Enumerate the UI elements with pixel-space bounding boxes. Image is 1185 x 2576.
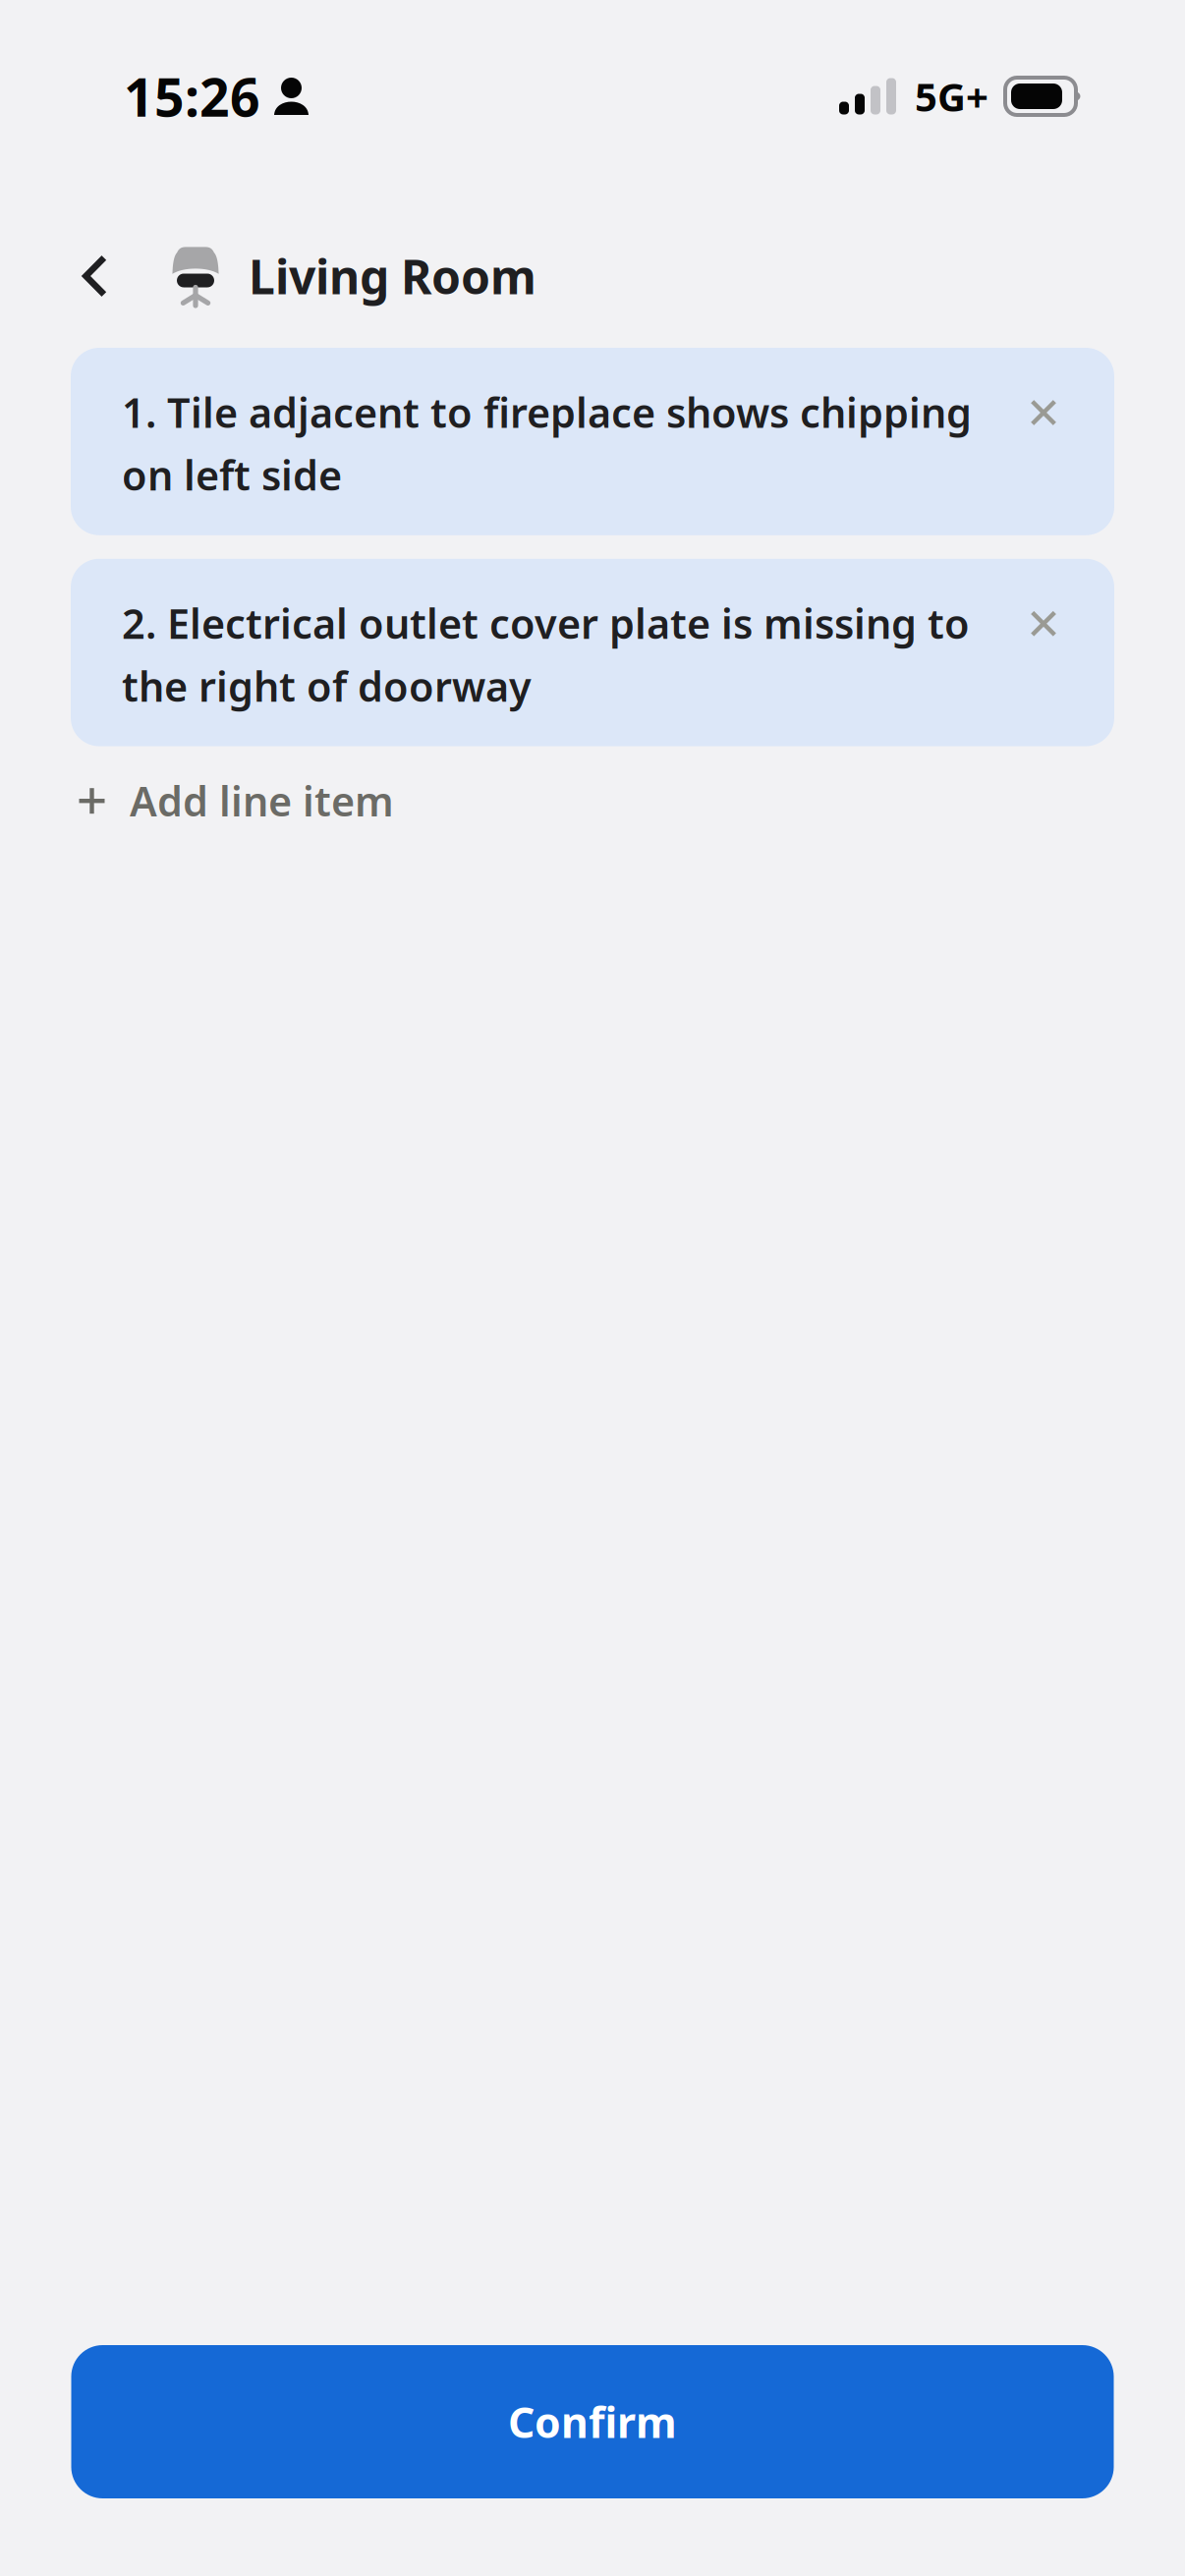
staticText: 15:26	[124, 62, 260, 131]
staticText: 5G+	[915, 70, 988, 122]
button[interactable]: Add line item	[0, 746, 1185, 845]
button[interactable]: Back	[0, 247, 172, 306]
staticText: Living Room	[249, 245, 536, 307]
staticText: 2. Electrical outlet cover plate is miss…	[122, 596, 970, 713]
staticText: 1. Tile adjacent to fireplace shows chip…	[122, 385, 972, 502]
staticText: Confirm	[508, 2394, 677, 2450]
staticText: Add line item	[130, 774, 394, 828]
button[interactable]: Confirm	[71, 2345, 1114, 2498]
button[interactable]: Remove line item	[1016, 385, 1071, 440]
button[interactable]: Remove line item	[1016, 596, 1071, 651]
